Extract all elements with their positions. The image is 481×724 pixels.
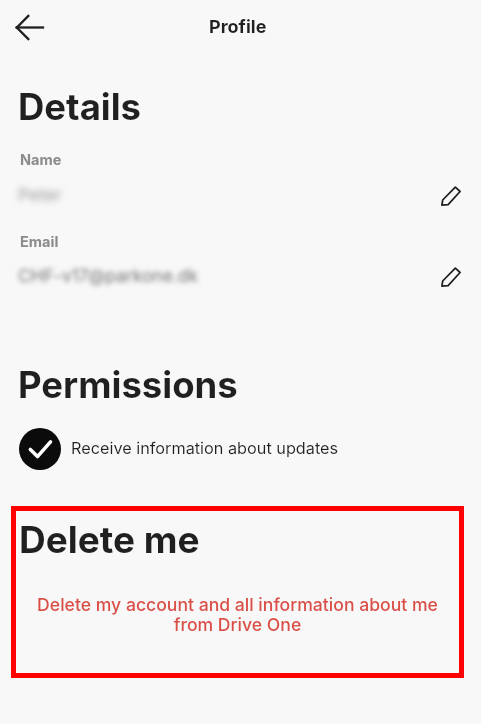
staticText: Email (20, 233, 59, 251)
button[interactable]: Edit Name (438, 183, 464, 209)
button[interactable]: Delete me (11, 506, 464, 678)
staticText: Profile (209, 16, 267, 38)
staticText: Delete me (19, 517, 200, 562)
staticText: Receive information about updates (71, 438, 339, 458)
staticText: Delete my account and all information ab… (17, 594, 458, 635)
staticText: Peter (18, 184, 62, 205)
staticText: Name (20, 151, 62, 169)
button[interactable]: Back (5, 3, 53, 51)
staticText: CHF-v17@parkone.dk (18, 265, 198, 286)
button[interactable]: Peter (0, 182, 481, 212)
button[interactable]: Edit Email (438, 264, 464, 290)
staticText: Details (18, 85, 142, 129)
staticText: Permissions (18, 363, 238, 407)
button[interactable]: CHF-v17@parkone.dk (0, 263, 481, 293)
button[interactable]: Receive information about updates (0, 423, 481, 475)
